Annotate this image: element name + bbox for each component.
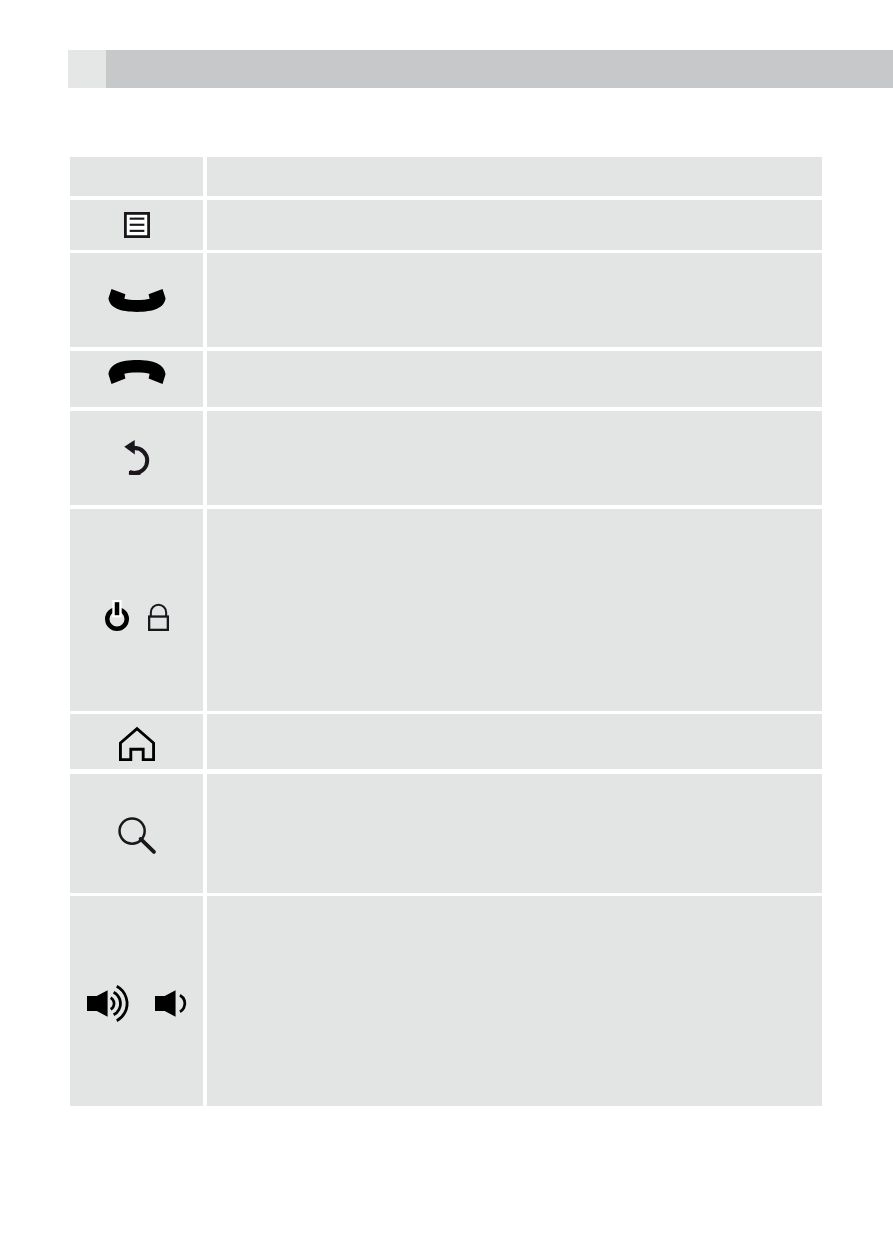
- button[interactable]: Volume: [70, 896, 203, 1106]
- button[interactable]: Back: [70, 411, 203, 505]
- button[interactable]: Answer call: [70, 253, 203, 347]
- button[interactable]: Power and lock: [70, 509, 203, 711]
- button[interactable]: Search: [70, 774, 203, 893]
- button[interactable]: Home: [70, 714, 203, 769]
- button[interactable]: End call: [70, 351, 203, 407]
- button[interactable]: Menu: [70, 200, 203, 250]
